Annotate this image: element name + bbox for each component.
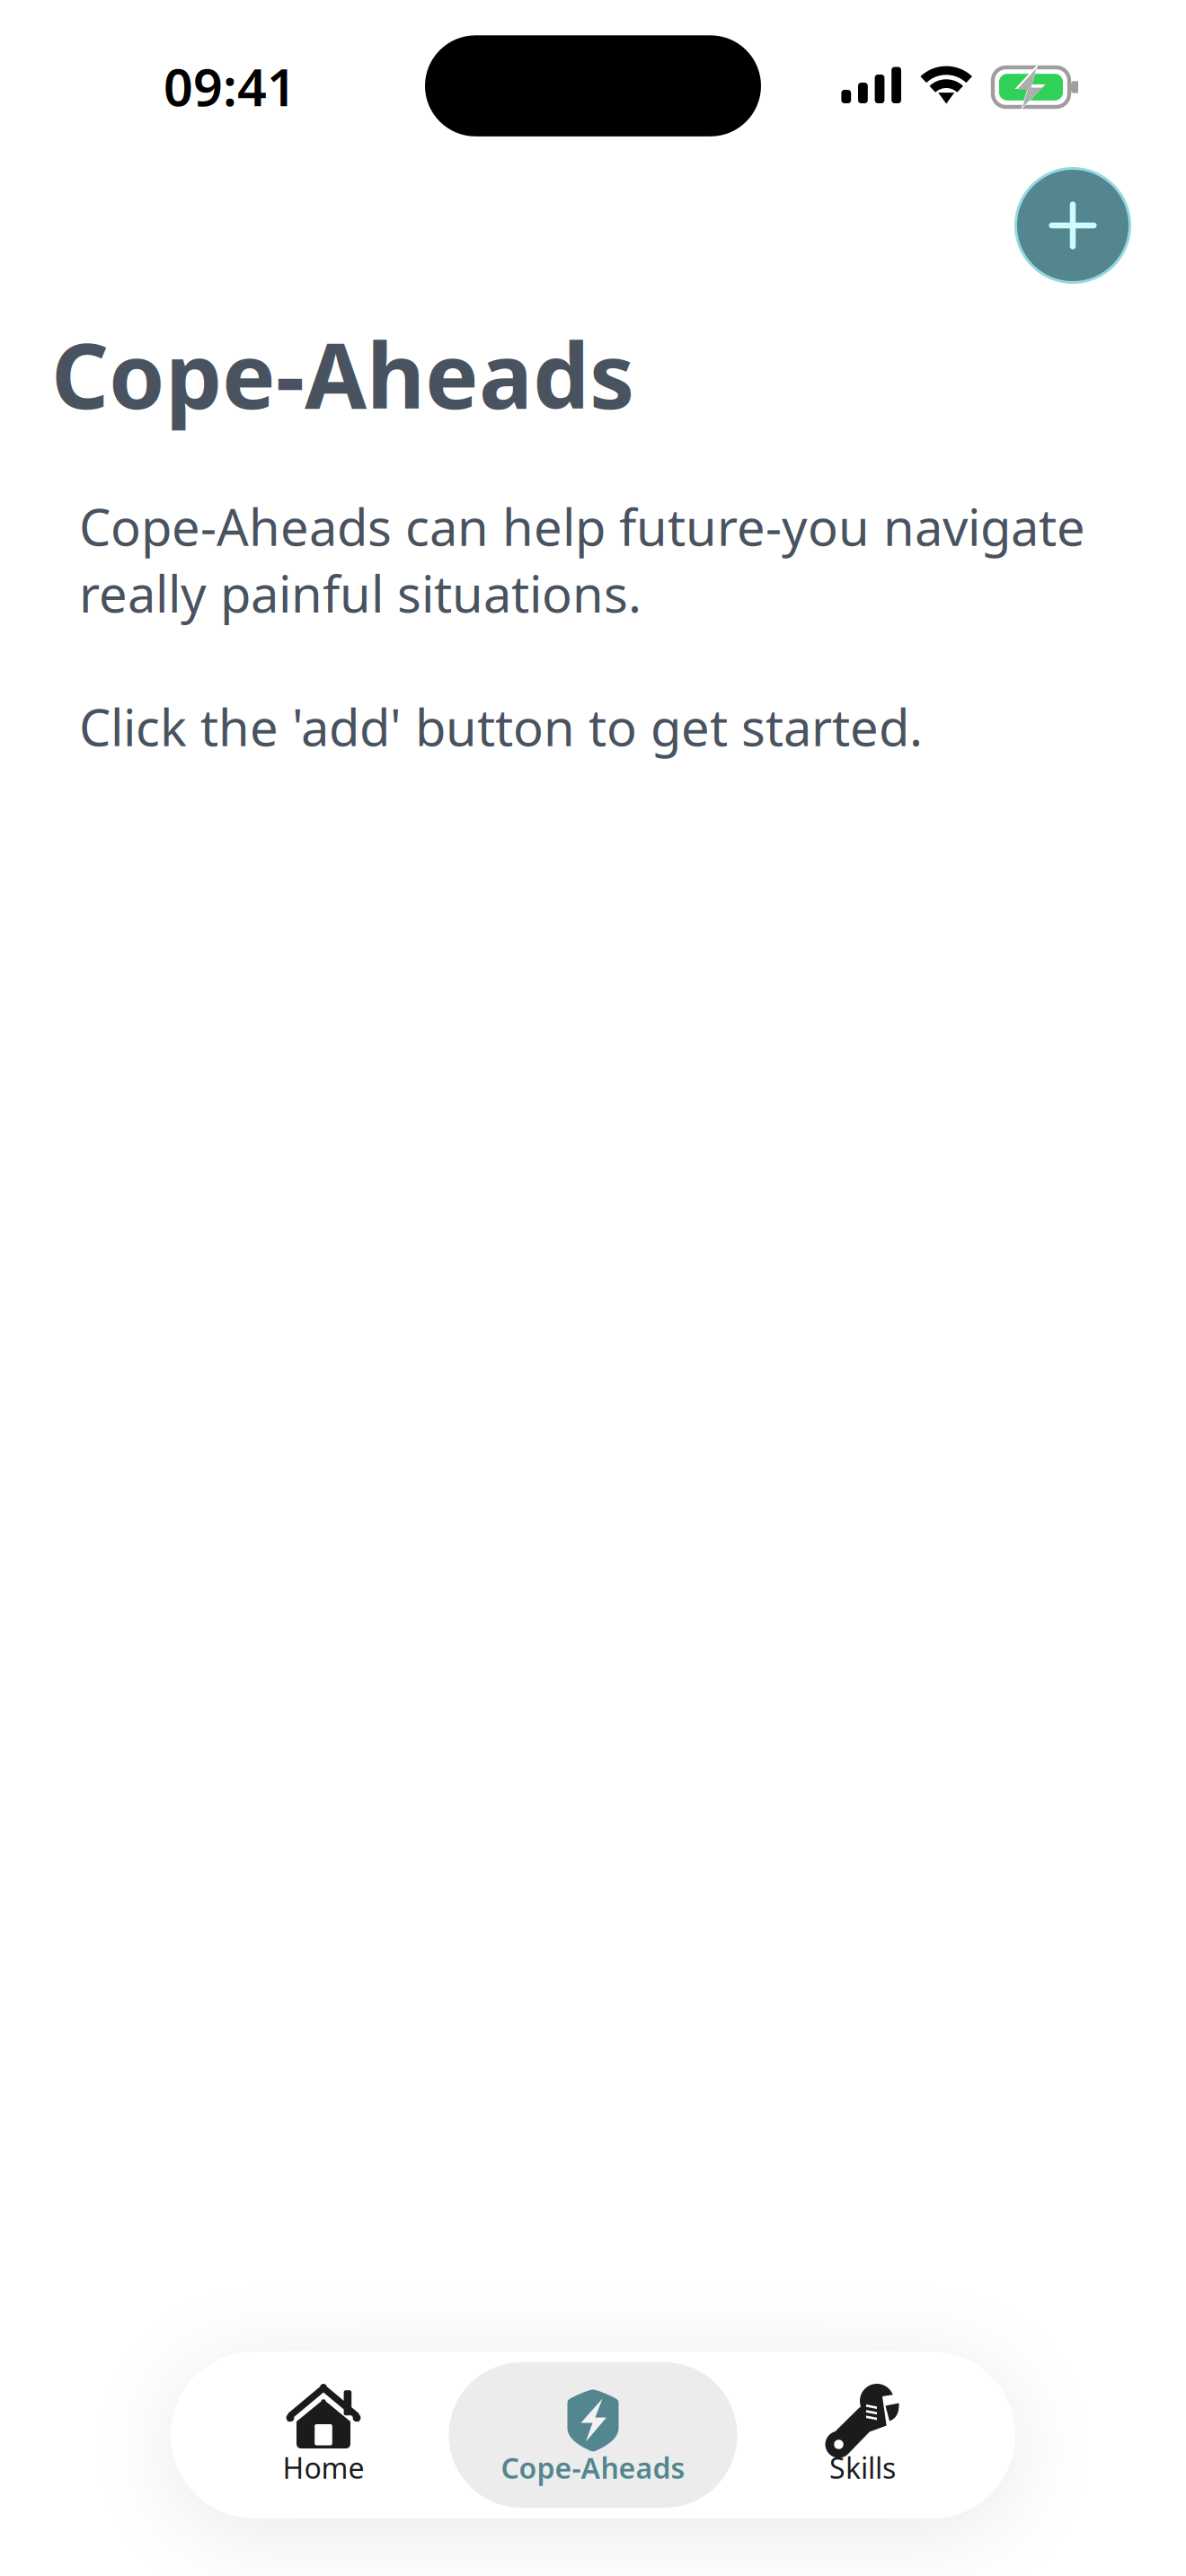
button[interactable]: Home xyxy=(189,2362,458,2508)
button[interactable]: Add xyxy=(1014,167,1131,284)
staticText: Home xyxy=(283,2448,364,2487)
staticText: 09:41 xyxy=(164,52,296,120)
button[interactable]: Skills xyxy=(728,2362,997,2508)
staticText: Cope-Aheads can help future-you navigate… xyxy=(79,493,1085,760)
staticText: Cope-Aheads xyxy=(501,2448,685,2487)
staticText: Skills xyxy=(829,2448,896,2487)
button[interactable]: Cope-Aheads xyxy=(458,2362,728,2508)
staticText: Cope-Aheads xyxy=(51,314,634,434)
